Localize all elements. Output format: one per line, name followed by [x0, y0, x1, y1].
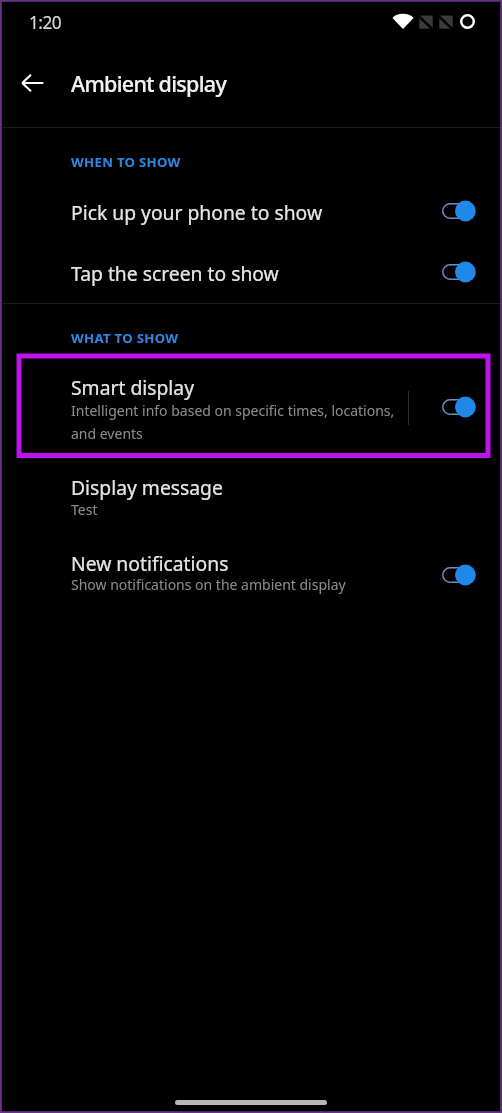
button[interactable]: Toggle: [442, 261, 478, 283]
button[interactable]: Display message: [0, 466, 502, 528]
staticText: Smart display: [71, 374, 195, 400]
button[interactable]: Toggle: [442, 396, 478, 418]
staticText: WHEN TO SHOW: [71, 153, 181, 171]
button[interactable]: Back: [9, 60, 55, 106]
staticText: Pick up your phone to show: [71, 199, 323, 225]
staticText: Test: [71, 500, 98, 519]
button[interactable]: Toggle: [442, 564, 478, 586]
button[interactable]: Toggle: [442, 200, 478, 222]
staticText: 1:20: [29, 11, 62, 34]
button[interactable]: Smart display: [0, 366, 400, 458]
staticText: Show notifications on the ambient displa…: [71, 575, 346, 594]
button[interactable]: New notifications: [0, 542, 502, 604]
staticText: Ambient display: [71, 69, 227, 98]
staticText: New notifications: [71, 550, 229, 576]
staticText: WHAT TO SHOW: [71, 329, 179, 347]
button[interactable]: Pick up your phone to show: [0, 186, 502, 238]
staticText: Tap the screen to show: [71, 260, 279, 286]
staticText: Intelligent info based on specific times…: [71, 401, 401, 443]
staticText: Display message: [71, 474, 223, 500]
button[interactable]: Tap the screen to show: [0, 247, 502, 299]
